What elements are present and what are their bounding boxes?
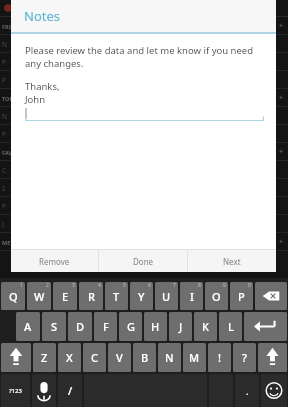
staticText: Z [41, 350, 48, 365]
button[interactable]: P [230, 282, 253, 310]
button[interactable]: Next [188, 250, 276, 272]
staticText: J [179, 319, 183, 334]
staticText: F [103, 319, 109, 334]
staticText: I [2, 220, 5, 229]
staticText: . [246, 385, 249, 397]
button[interactable]: L [219, 312, 242, 341]
button[interactable]: E [53, 282, 77, 310]
button[interactable]: Backspace [255, 282, 287, 310]
staticText: N [2, 40, 7, 49]
staticText: V [116, 350, 123, 365]
staticText: + [279, 93, 284, 103]
button[interactable]: X [58, 343, 81, 372]
staticText: Q [9, 289, 18, 304]
staticText: 0 [248, 282, 251, 289]
button[interactable]: U [155, 282, 178, 310]
staticText: S [2, 184, 6, 193]
button[interactable]: Voice input [32, 374, 56, 407]
staticText: + [279, 237, 284, 247]
staticText: B [141, 350, 149, 365]
staticText: P [2, 130, 6, 139]
staticText: T [113, 289, 120, 304]
staticText: U [162, 289, 171, 304]
button[interactable]: K [194, 312, 217, 341]
staticText: H [151, 319, 160, 334]
staticText: Done [133, 256, 154, 267]
button[interactable]: B [133, 343, 156, 372]
button[interactable]: H [144, 312, 167, 341]
button[interactable]: N [158, 343, 181, 372]
staticText: P [2, 58, 6, 67]
staticText: / [68, 383, 73, 398]
button[interactable]: A [16, 312, 40, 341]
staticText: 4 [98, 282, 101, 289]
button[interactable]: Remove [11, 250, 98, 272]
staticText: ? [242, 350, 247, 365]
button[interactable]: Y [130, 282, 153, 310]
button[interactable]: T [105, 282, 128, 310]
staticText: C [2, 166, 7, 175]
button[interactable]: . [235, 374, 259, 407]
staticText: P [2, 202, 6, 211]
button[interactable]: Done [99, 250, 187, 272]
staticText: FAV [2, 149, 13, 156]
button[interactable]: M [183, 343, 206, 372]
button[interactable]: Q [1, 282, 25, 310]
staticText: 5 [123, 282, 126, 289]
button[interactable]: J [169, 312, 192, 341]
button[interactable]: Enter [244, 312, 287, 341]
staticText: R [88, 289, 95, 304]
button[interactable]: S [42, 312, 66, 341]
staticText: ! [218, 350, 222, 365]
button[interactable]: I [180, 282, 203, 310]
button[interactable]: ! [208, 343, 231, 372]
staticText: 2 [46, 282, 49, 289]
staticText: Remove [39, 256, 70, 267]
staticText: D [76, 319, 85, 334]
button[interactable]: D [68, 312, 92, 341]
staticText: S [51, 319, 58, 334]
button[interactable]: W [27, 282, 51, 310]
staticText: X [66, 350, 73, 365]
staticText: C [91, 350, 98, 365]
staticText: W [34, 289, 45, 304]
button[interactable]: O [205, 282, 228, 310]
button[interactable]: C [83, 343, 106, 372]
staticText: Please review the data and let me know i… [25, 44, 264, 70]
button[interactable]: Shift [1, 343, 31, 372]
staticText: 6 [148, 282, 151, 289]
staticText: 3 [72, 282, 75, 289]
button[interactable]: V [108, 343, 131, 372]
staticText: ME [2, 239, 11, 246]
staticText: 9 [223, 282, 226, 289]
staticText: TODAY [2, 95, 21, 102]
staticText: Notes [24, 7, 60, 25]
staticText: Next [223, 256, 241, 267]
staticText: P [2, 76, 6, 85]
button[interactable]: R [79, 282, 103, 310]
staticText: E [62, 289, 69, 304]
staticText: FRI [2, 23, 11, 30]
button[interactable]: / [58, 374, 82, 407]
staticText: Y [138, 289, 145, 304]
button[interactable]: ?123 [1, 374, 30, 407]
staticText: 7 [173, 282, 176, 289]
button[interactable]: Shift [258, 343, 287, 372]
button[interactable]: ? [233, 343, 256, 372]
staticText: I [190, 289, 194, 304]
staticText: M [189, 350, 200, 365]
button[interactable]: Z [33, 343, 56, 372]
staticText: 8 [198, 282, 201, 289]
staticText: N [165, 350, 174, 365]
staticText: P [238, 289, 245, 304]
staticText: Thanks, [25, 80, 60, 93]
staticText: 1 [20, 282, 23, 289]
button[interactable]: G [119, 312, 142, 341]
button[interactable]: F [94, 312, 117, 341]
staticText: John [25, 93, 46, 106]
staticText: L [228, 319, 234, 334]
staticText: + [279, 21, 284, 31]
button[interactable]: Emoji [261, 374, 287, 407]
